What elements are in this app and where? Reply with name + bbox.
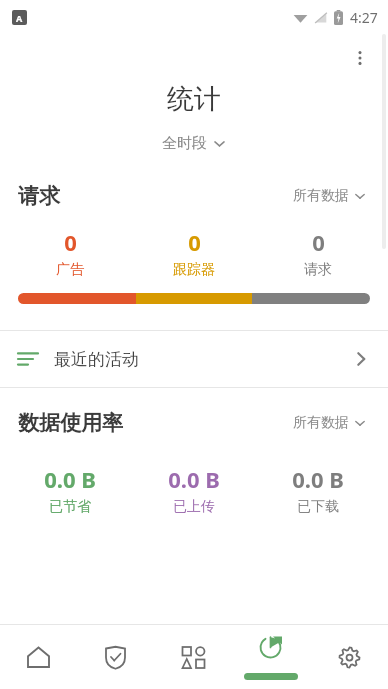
- button[interactable]: 所有数据: [289, 183, 370, 209]
- staticText: 0: [312, 227, 325, 257]
- button[interactable]: Home: [0, 625, 77, 689]
- staticText: 0.0 B: [44, 464, 96, 494]
- button[interactable]: 0.0 B: [256, 464, 380, 516]
- button[interactable]: Protection: [77, 625, 154, 689]
- button[interactable]: 所有数据: [289, 410, 370, 436]
- button[interactable]: 0: [132, 227, 256, 279]
- staticText: 所有数据: [293, 414, 349, 432]
- staticText: 已下载: [297, 498, 339, 516]
- staticText: A: [16, 12, 23, 24]
- button[interactable]: 0: [256, 227, 380, 279]
- staticText: 请求: [304, 261, 332, 279]
- staticText: 0.0 B: [292, 464, 344, 494]
- button[interactable]: Settings: [310, 625, 388, 689]
- button[interactable]: More options: [340, 38, 380, 78]
- staticText: 请求: [18, 183, 60, 209]
- button[interactable]: 0.0 B: [132, 464, 256, 516]
- staticText: 最近的活动: [54, 349, 139, 370]
- staticText: 0: [188, 227, 201, 257]
- staticText: 所有数据: [293, 187, 349, 205]
- staticText: 0: [64, 227, 77, 257]
- button[interactable]: 全时段: [154, 130, 234, 157]
- staticText: 已节省: [49, 498, 91, 516]
- staticText: 跟踪器: [173, 261, 215, 279]
- staticText: 统计: [167, 82, 221, 116]
- staticText: 数据使用率: [18, 410, 123, 436]
- button[interactable]: 0: [8, 227, 132, 279]
- button[interactable]: 0.0 B: [8, 464, 132, 516]
- button[interactable]: Statistics: [232, 625, 310, 689]
- staticText: 4:27: [350, 8, 378, 27]
- staticText: 已上传: [173, 498, 215, 516]
- button[interactable]: Apps: [154, 625, 232, 689]
- staticText: 广告: [56, 261, 84, 279]
- staticText: 全时段: [162, 134, 207, 153]
- button[interactable]: 最近的活动: [0, 331, 388, 387]
- staticText: 0.0 B: [168, 464, 220, 494]
